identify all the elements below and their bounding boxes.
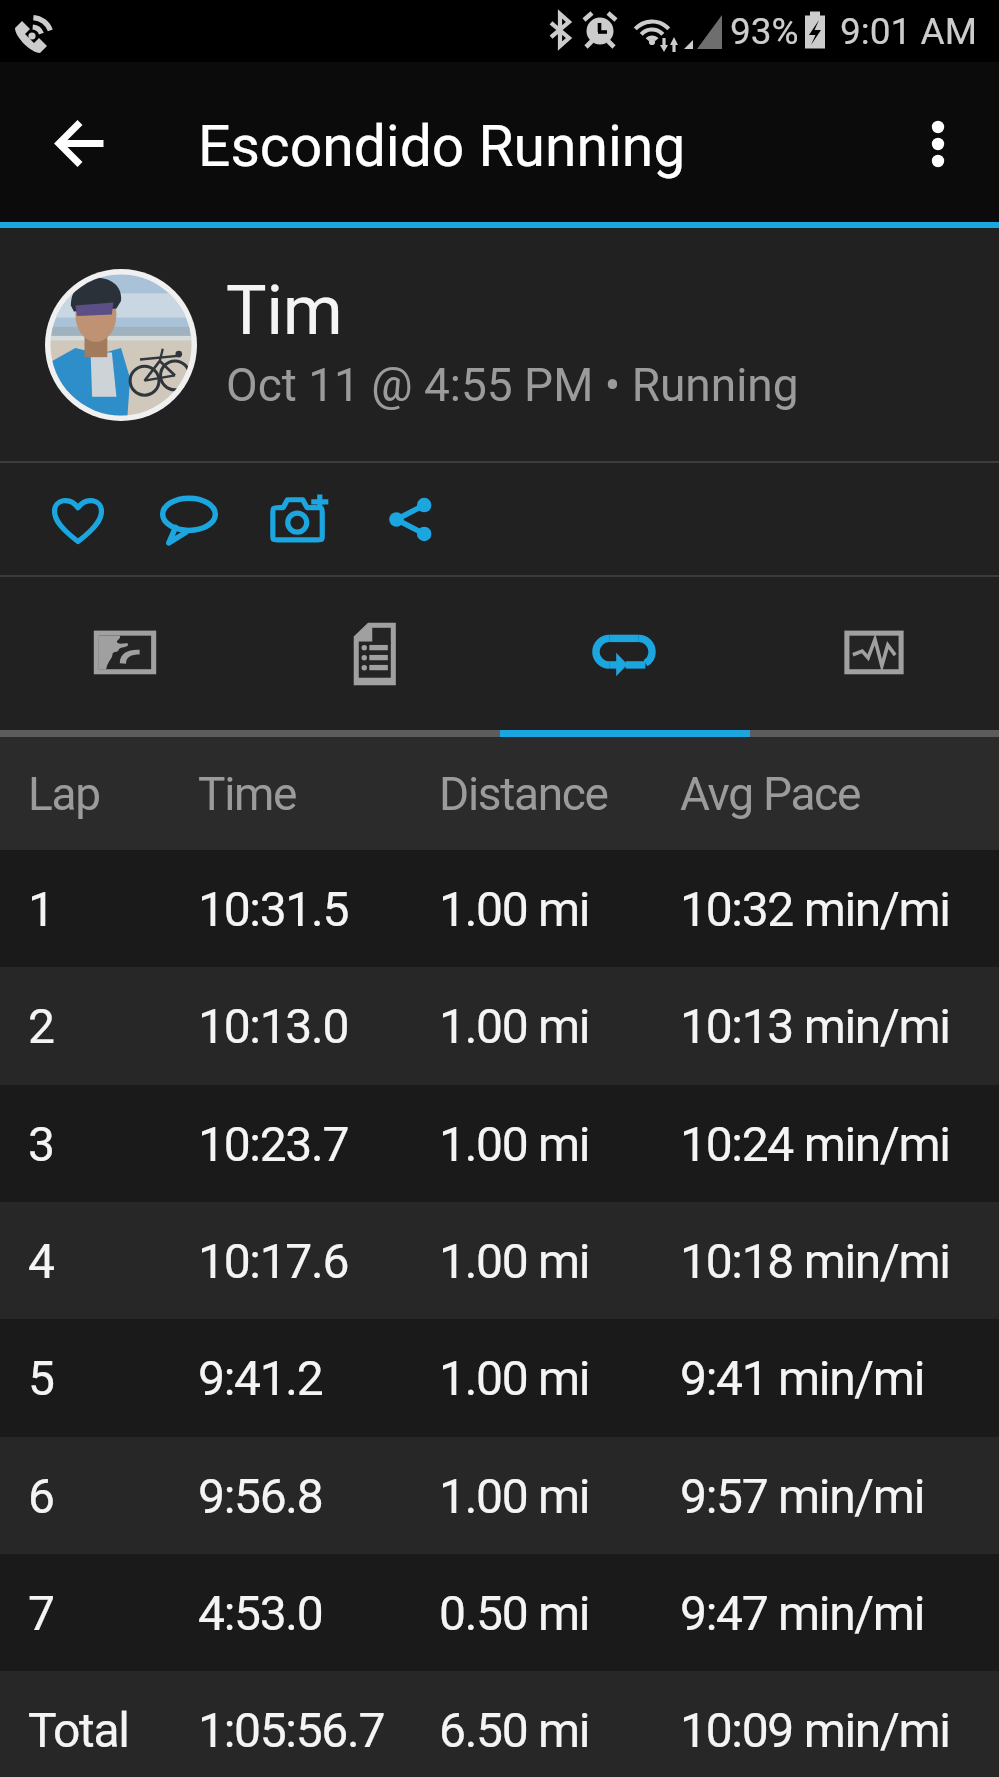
staticText: 6.50 mi: [439, 1702, 590, 1758]
staticText: Time: [198, 767, 297, 821]
staticText: 1.00 mi: [439, 881, 590, 937]
staticText: 10:18 min/mi: [680, 1233, 950, 1289]
button[interactable]: 4: [0, 1202, 999, 1320]
staticText: Avg Pace: [680, 767, 860, 821]
staticText: 1.00 mi: [439, 1350, 590, 1406]
staticText: 9:56.8: [198, 1468, 323, 1524]
staticText: 4: [28, 1233, 54, 1289]
button[interactable]: Share: [367, 475, 455, 563]
staticText: 5: [28, 1350, 54, 1406]
button[interactable]: 1: [0, 850, 999, 968]
button[interactable]: Comment: [145, 475, 233, 563]
staticText: 1.00 mi: [439, 998, 590, 1054]
button[interactable]: Navigate up: [29, 90, 133, 194]
staticText: 1.00 mi: [439, 1468, 590, 1524]
button[interactable]: Total: [0, 1671, 999, 1777]
button[interactable]: 5: [0, 1319, 999, 1437]
staticText: 9:57 min/mi: [680, 1468, 925, 1524]
staticText: 10:13.0: [198, 998, 349, 1054]
button[interactable]: Lap: [0, 737, 999, 850]
staticText: 10:32 min/mi: [680, 881, 950, 937]
staticText: 93%: [730, 10, 799, 53]
staticText: 10:09 min/mi: [680, 1702, 950, 1758]
staticText: 7: [28, 1585, 54, 1641]
staticText: 4:53.0: [198, 1585, 323, 1641]
staticText: 1: [28, 881, 54, 937]
staticText: 3: [28, 1116, 54, 1172]
button[interactable]: Charts: [749, 577, 999, 730]
staticText: 10:24 min/mi: [680, 1116, 950, 1172]
staticText: 1:05:56.7: [198, 1702, 385, 1758]
staticText: 1.00 mi: [439, 1233, 590, 1289]
button[interactable]: Tim: [0, 228, 999, 461]
button[interactable]: Laps: [499, 577, 749, 730]
staticText: 10:13 min/mi: [680, 998, 950, 1054]
staticText: 10:17.6: [198, 1233, 349, 1289]
staticText: 0.50 mi: [439, 1585, 590, 1641]
button[interactable]: Map: [0, 577, 249, 730]
button[interactable]: Splits: [249, 577, 499, 730]
staticText: 1.00 mi: [439, 1116, 590, 1172]
staticText: Tim: [226, 271, 343, 351]
button[interactable]: Like: [34, 475, 122, 563]
staticText: Escondido Running: [198, 113, 686, 180]
button[interactable]: 2: [0, 967, 999, 1085]
staticText: 10:31.5: [198, 881, 349, 937]
staticText: 6: [28, 1468, 54, 1524]
staticText: 10:23.7: [198, 1116, 349, 1172]
button[interactable]: Add photo: [257, 475, 345, 563]
staticText: 9:01 AM: [840, 10, 977, 53]
staticText: Oct 11 @ 4:55 PM • Running: [226, 358, 799, 412]
button[interactable]: More options: [889, 93, 987, 191]
button[interactable]: 7: [0, 1554, 999, 1672]
button[interactable]: 6: [0, 1437, 999, 1555]
staticText: 9:41 min/mi: [680, 1350, 925, 1406]
staticText: 9:41.2: [198, 1350, 323, 1406]
staticText: 2: [28, 998, 54, 1054]
staticText: Lap: [28, 767, 100, 821]
staticText: Total: [28, 1702, 129, 1758]
staticText: Distance: [439, 767, 608, 821]
button[interactable]: 3: [0, 1085, 999, 1203]
staticText: 9:47 min/mi: [680, 1585, 925, 1641]
